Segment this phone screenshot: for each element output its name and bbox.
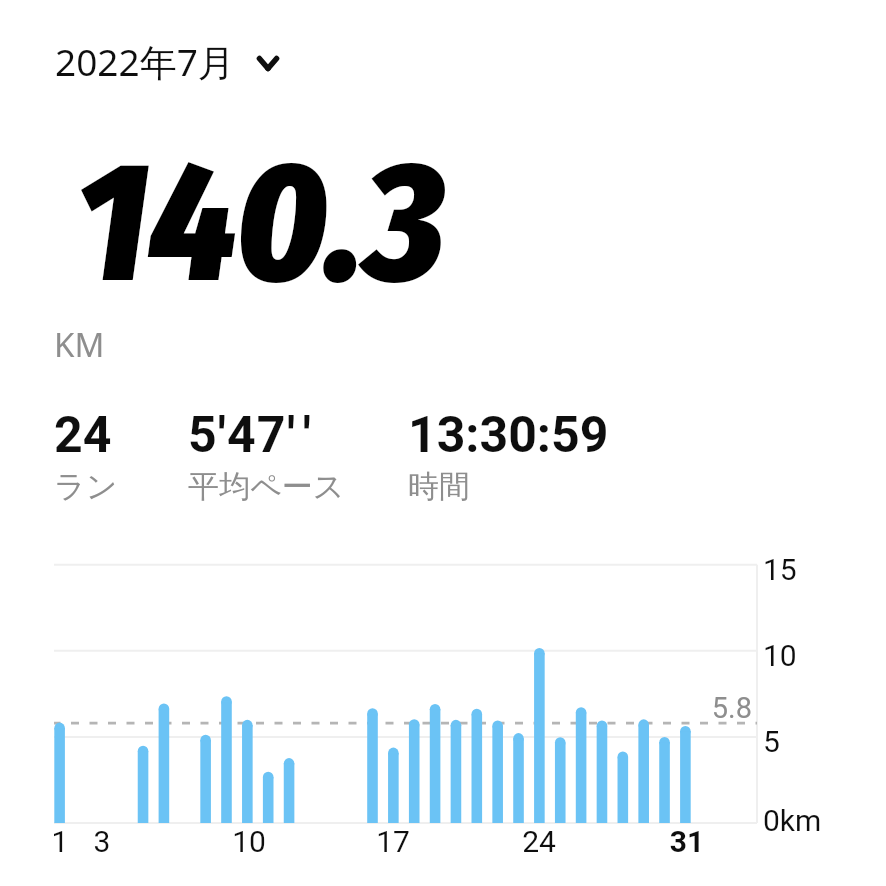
staticText: 2022年7月 xyxy=(55,36,235,87)
staticText: 0km xyxy=(763,803,822,838)
staticText: 140.3 xyxy=(76,123,445,325)
staticText: 31 xyxy=(657,824,717,859)
staticText: ラン xyxy=(54,467,118,506)
staticText: 時間 xyxy=(408,467,470,506)
staticText: 1 xyxy=(30,824,90,859)
staticText: 3 xyxy=(72,824,132,859)
button[interactable]: 24 xyxy=(46,406,126,506)
staticText: 10 xyxy=(219,824,279,859)
staticText: 5.8 xyxy=(657,691,752,725)
staticText: 24 xyxy=(54,406,112,465)
button[interactable]: 5'47 xyxy=(180,406,353,506)
staticText: 24 xyxy=(509,824,569,859)
staticText: 15 xyxy=(763,552,797,587)
other: Change month xyxy=(254,49,282,77)
staticText: KM xyxy=(54,322,105,367)
staticText: '' xyxy=(287,406,320,465)
button[interactable]: 13:30:59 xyxy=(400,406,617,506)
staticText: 10 xyxy=(763,638,797,673)
staticText: 5'47 xyxy=(188,406,287,465)
staticText: 平均ペース xyxy=(188,467,345,506)
staticText: 17 xyxy=(363,824,423,859)
button[interactable]: 2022年7月 xyxy=(39,26,298,97)
other: Daily distance bar chart xyxy=(0,0,886,886)
staticText: 5 xyxy=(763,724,780,759)
staticText: 13:30:59 xyxy=(408,406,609,465)
